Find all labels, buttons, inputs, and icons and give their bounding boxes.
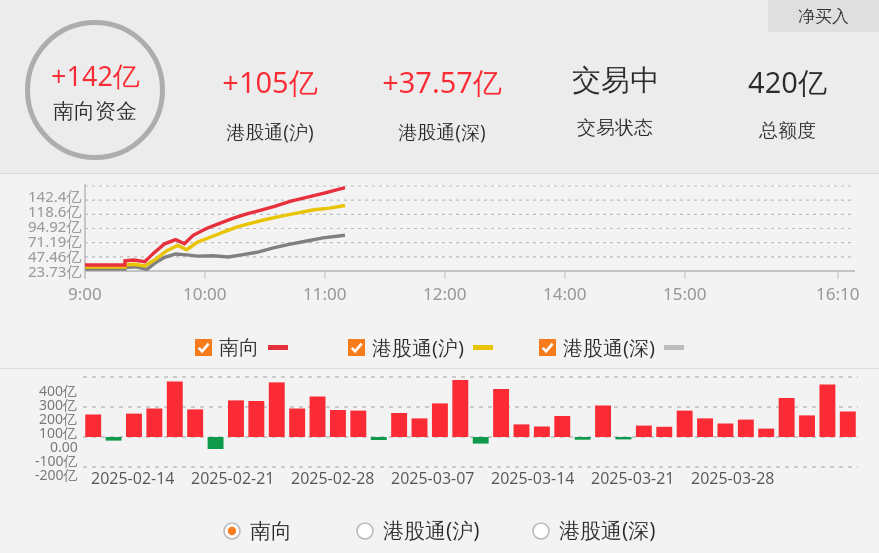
staticText: 400亿 [39, 381, 78, 400]
button[interactable]: +105亿 [190, 62, 350, 145]
staticText: 100亿 [39, 423, 78, 442]
staticText: 港股通(深) [559, 516, 656, 545]
button[interactable]: 净买入 [768, 0, 879, 32]
button[interactable]: 港股通(深) [539, 334, 684, 361]
staticText: 总额度 [759, 119, 816, 143]
button[interactable]: 交易中 [535, 62, 695, 140]
button[interactable]: 420亿 [707, 62, 867, 143]
staticText: 2025-03-21 [591, 467, 675, 489]
staticText: 净买入 [798, 6, 849, 27]
staticText: 0.00 [50, 437, 78, 456]
staticText: 94.92亿 [28, 216, 82, 236]
button[interactable]: 港股通(沪) [348, 334, 493, 361]
staticText: 交易中 [572, 62, 659, 99]
staticText: 9:00 [68, 282, 102, 305]
button[interactable]: 港股通(沪) [356, 516, 480, 545]
staticText: 71.19亿 [28, 231, 82, 251]
staticText: 10:00 [183, 282, 227, 305]
staticText: 2025-02-21 [191, 467, 275, 489]
staticText: 15:00 [663, 282, 707, 305]
staticText: 南向资金 [53, 98, 137, 124]
button[interactable]: 港股通(深) [532, 516, 656, 545]
button[interactable]: 南向 [195, 335, 288, 360]
staticText: 420亿 [748, 62, 827, 102]
staticText: 港股通(深) [398, 119, 486, 145]
staticText: 港股通(沪) [226, 119, 314, 145]
staticText: 港股通(深) [563, 334, 655, 361]
staticText: 2025-02-14 [91, 467, 175, 489]
staticText: 47.46亿 [28, 246, 82, 266]
staticText: 300亿 [39, 395, 78, 414]
staticText: 200亿 [39, 409, 78, 428]
staticText: 南向 [250, 518, 292, 544]
staticText: 港股通(沪) [372, 334, 464, 361]
staticText: 2025-03-14 [491, 467, 575, 489]
staticText: 2025-03-07 [391, 467, 475, 489]
staticText: 11:00 [303, 282, 347, 305]
staticText: 14:00 [543, 282, 587, 305]
staticText: +105亿 [222, 62, 318, 102]
staticText: 142.4亿 [28, 186, 82, 206]
staticText: 2025-03-28 [691, 467, 775, 489]
staticText: 16:10 [816, 282, 860, 305]
button[interactable]: +37.57亿 [362, 62, 522, 145]
staticText: 12:00 [423, 282, 467, 305]
staticText: 23.73亿 [28, 261, 82, 281]
staticText: 交易状态 [577, 116, 653, 140]
staticText: +37.57亿 [382, 62, 502, 102]
button[interactable]: 南向 [223, 518, 292, 544]
staticText: 118.6亿 [28, 201, 82, 221]
staticText: +142亿 [51, 57, 140, 94]
staticText: 南向 [219, 335, 259, 360]
staticText: -100亿 [35, 451, 78, 470]
staticText: -200亿 [35, 465, 78, 484]
staticText: 2025-02-28 [291, 467, 375, 489]
staticText: 港股通(沪) [383, 516, 480, 545]
